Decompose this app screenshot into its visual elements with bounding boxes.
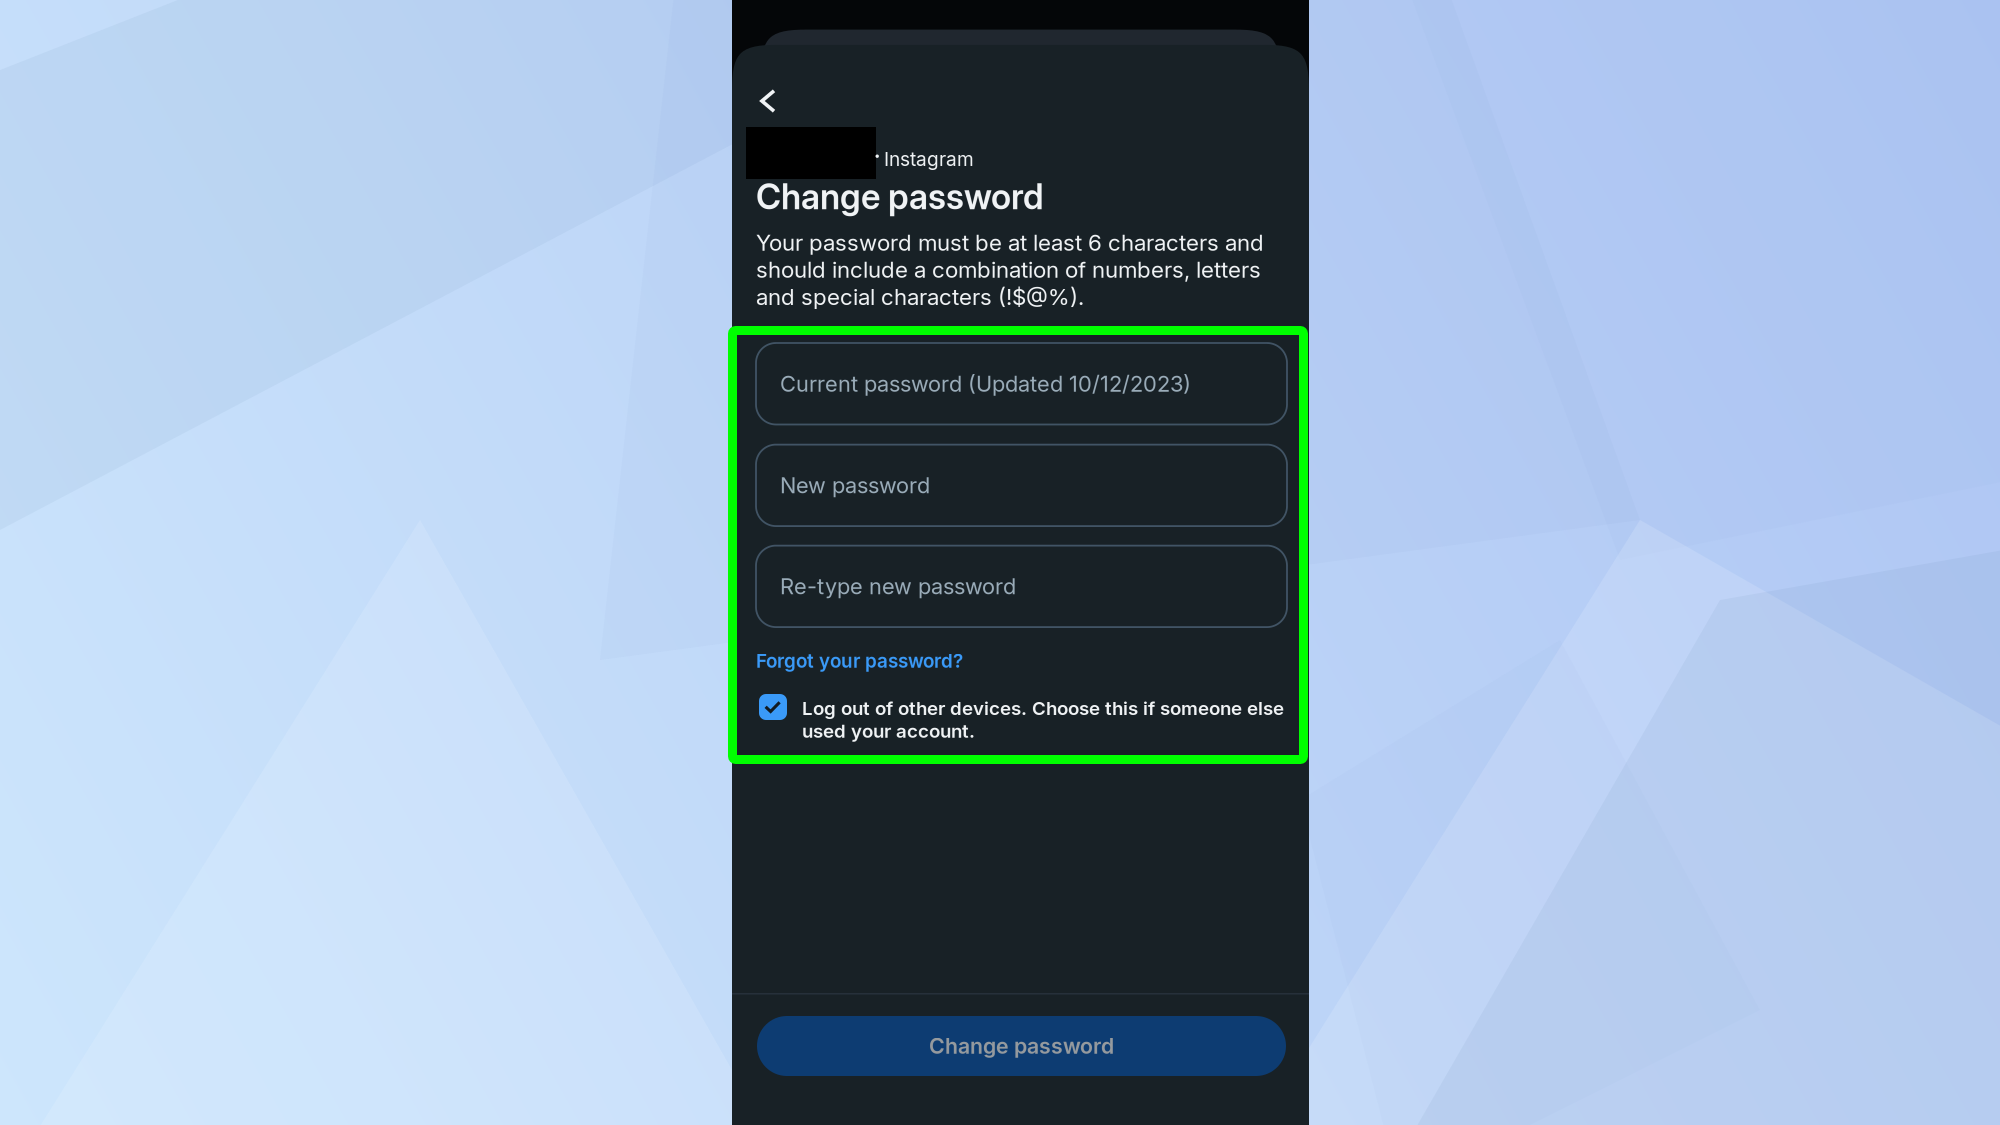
button[interactable]: Log out of other devices. Choose this if… bbox=[759, 694, 1287, 739]
button[interactable]: Back bbox=[746, 79, 790, 123]
staticText: Re-type new password bbox=[780, 573, 1016, 600]
staticText: Forgot your password? bbox=[756, 650, 963, 672]
staticText: Change password bbox=[929, 1033, 1114, 1059]
button[interactable]: Re-type new password bbox=[756, 546, 1287, 627]
staticText: Current password (Updated 10/12/2023) bbox=[780, 370, 1191, 397]
staticText: Change password bbox=[756, 176, 1044, 218]
staticText: Log out of other devices. Choose this if… bbox=[802, 697, 1284, 742]
button[interactable]: New password bbox=[756, 445, 1287, 526]
button[interactable]: Current password (Updated 10/12/2023) bbox=[756, 343, 1287, 424]
staticText: Your password must be at least 6 charact… bbox=[756, 229, 1264, 310]
button[interactable]: Change password bbox=[757, 1016, 1286, 1076]
staticText: New password bbox=[780, 472, 930, 499]
staticText: Instagram bbox=[884, 147, 974, 171]
button[interactable]: Forgot your password? bbox=[756, 649, 963, 673]
